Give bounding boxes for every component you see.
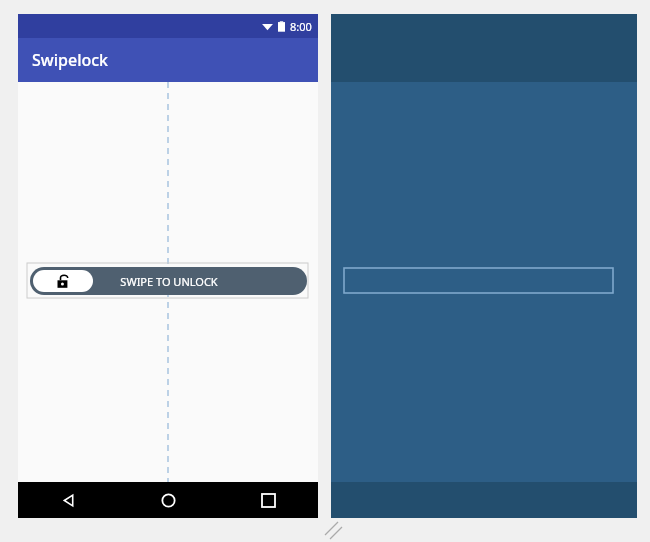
staticText: 8:00: [290, 19, 312, 34]
button[interactable]: Selected view bounds: [344, 268, 613, 293]
button[interactable]: Back: [18, 482, 118, 518]
staticText: Swipelock: [32, 49, 109, 71]
other: Unlock: [33, 270, 93, 292]
button[interactable]: SWIPE TO UNLOCK: [30, 267, 307, 295]
button[interactable]: Recents: [218, 482, 318, 518]
button[interactable]: Home: [118, 482, 218, 518]
staticText: SWIPE TO UNLOCK: [120, 274, 218, 289]
